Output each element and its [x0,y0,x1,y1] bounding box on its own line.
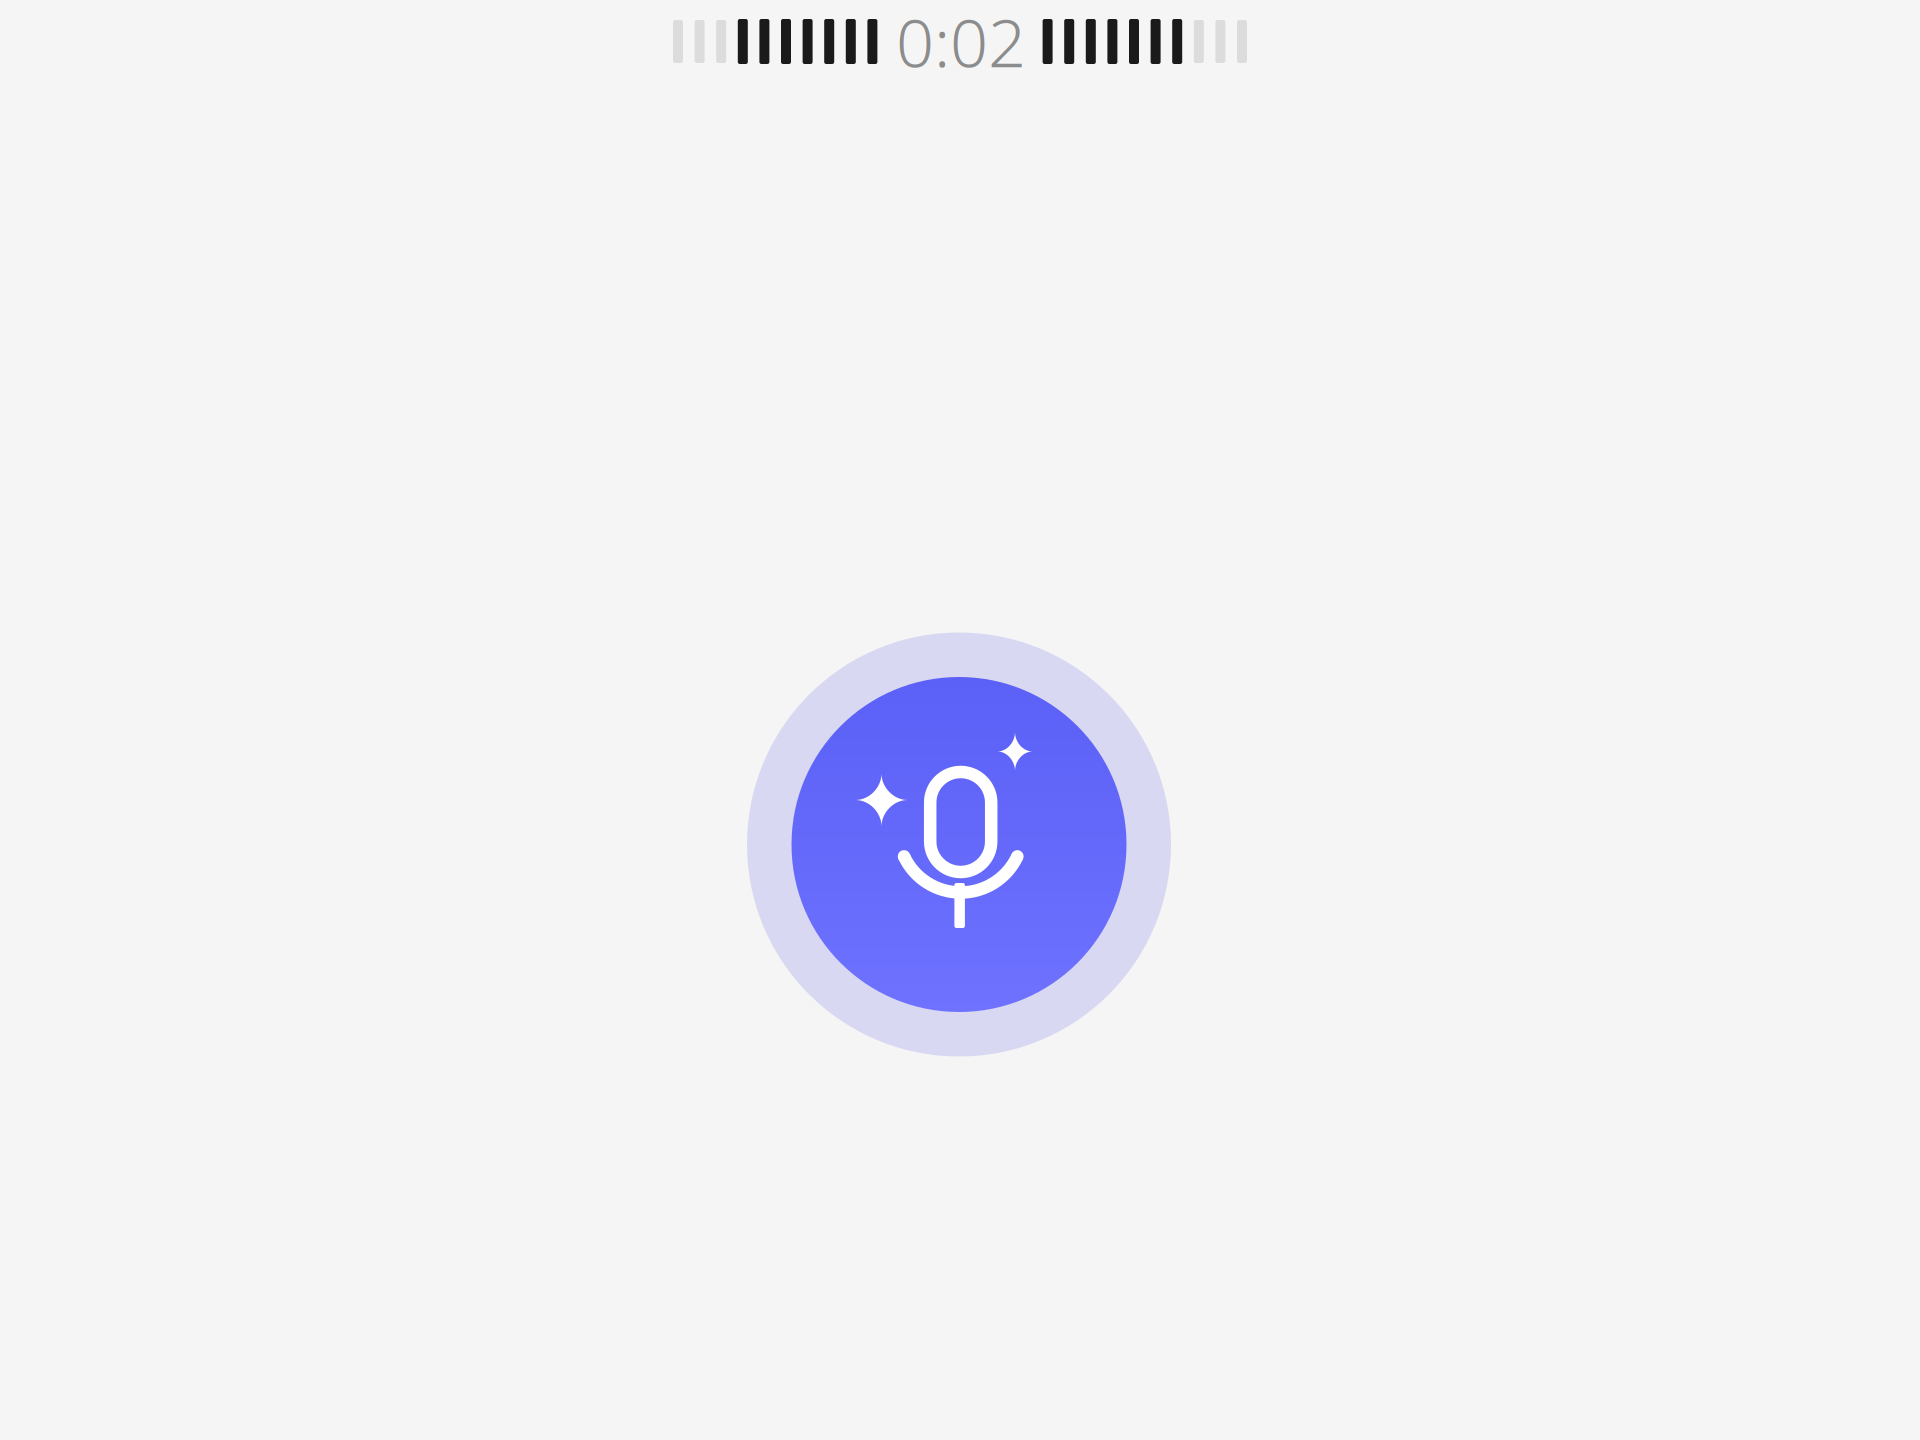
staticText: 0:02 [896,0,1026,86]
button[interactable]: Stop recording [747,632,1171,1056]
